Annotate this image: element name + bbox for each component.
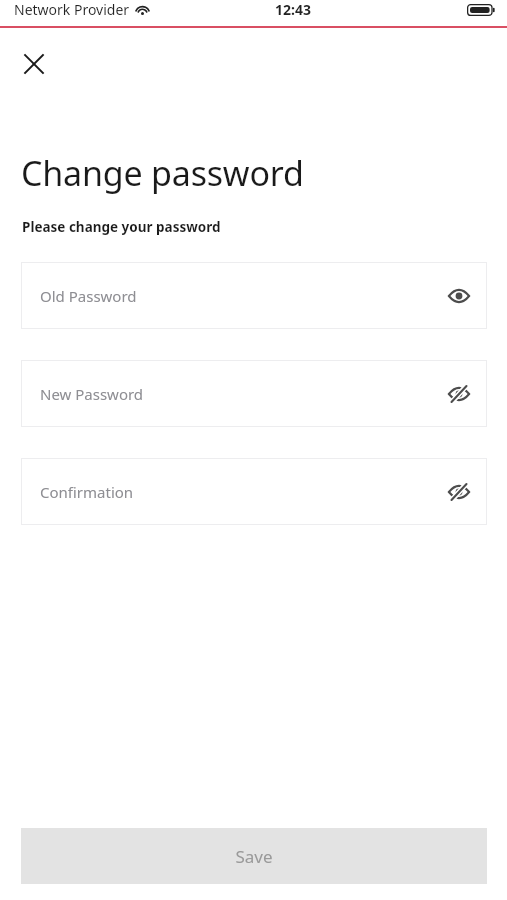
staticText: Network Provider (14, 0, 130, 19)
button[interactable]: Show password (437, 470, 481, 514)
staticText: 12:43 (275, 0, 311, 19)
button[interactable]: New Password (21, 360, 487, 427)
button[interactable]: Save (21, 828, 487, 884)
staticText: Confirmation (40, 482, 134, 502)
button[interactable]: Show password (437, 372, 481, 416)
button[interactable]: Close (10, 40, 58, 88)
button[interactable]: Hide password (437, 274, 481, 318)
staticText: Please change your password (22, 218, 221, 236)
staticText: Save (235, 845, 273, 868)
button[interactable]: Old Password (21, 262, 487, 329)
button[interactable]: Confirmation (21, 458, 487, 525)
staticText: Change password (21, 150, 304, 196)
staticText: New Password (40, 384, 144, 404)
staticText: Old Password (40, 286, 137, 306)
